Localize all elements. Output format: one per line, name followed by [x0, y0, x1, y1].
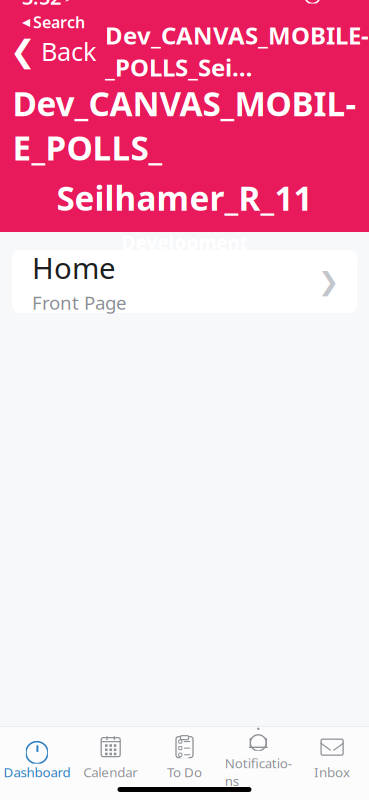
staticText: Dev_CANVAS_MOBILE_POLLS_: [12, 81, 356, 170]
button[interactable]: ◀: [22, 11, 85, 33]
staticText: Notifications: [225, 754, 292, 790]
staticText: Back: [41, 34, 97, 68]
staticText: Development: [121, 230, 247, 255]
staticText: Dev_CANVAS_MOBILE_POLLS_Sei…: [105, 19, 369, 83]
staticText: Dashboard: [3, 763, 70, 781]
staticText: ◀: [22, 16, 30, 28]
staticText: Inbox: [314, 763, 350, 781]
staticText: 3:52: [22, 0, 61, 10]
staticText: ➤: [64, 0, 75, 5]
staticText: Seilhamer_R_11: [56, 176, 312, 220]
staticText: Front Page: [32, 290, 127, 315]
button[interactable]: To Do: [148, 736, 221, 780]
staticText: Home: [32, 248, 116, 287]
button[interactable]: Home: [12, 250, 357, 313]
staticText: To Do: [167, 763, 202, 781]
button[interactable]: Notifications: [221, 736, 295, 780]
staticText: Calendar: [83, 763, 138, 781]
button[interactable]: ❮: [0, 30, 97, 73]
button[interactable]: Dashboard: [0, 736, 74, 780]
staticText: ❮: [10, 34, 36, 69]
button[interactable]: Calendar: [74, 736, 148, 780]
button[interactable]: Inbox: [295, 736, 369, 780]
staticText: ❯: [318, 267, 339, 296]
staticText: Search: [33, 11, 85, 33]
